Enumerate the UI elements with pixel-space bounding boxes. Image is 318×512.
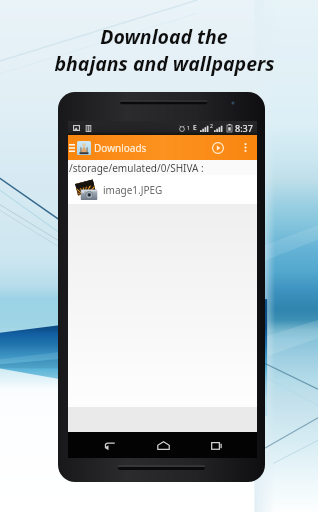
button[interactable]: Recents [203,432,229,458]
staticText: 1 [187,125,190,132]
staticText: 2 [210,123,213,130]
button[interactable]: Home [150,432,176,458]
staticText: E [193,123,197,132]
button[interactable]: Menu [68,135,76,160]
staticText: /storage/emulated/0/SHIVA : [69,161,204,175]
button[interactable]: Play [209,135,227,160]
staticText: image1.JPEG [103,183,163,197]
staticText: 8:37 [235,122,253,134]
staticText: bhajans and wallpapers [54,50,275,77]
staticText: Download the [100,23,228,50]
button[interactable]: image1.JPEG [68,175,257,204]
button[interactable]: More options [240,135,250,160]
button[interactable]: Back [96,432,122,458]
staticText: Downloads [94,141,147,155]
